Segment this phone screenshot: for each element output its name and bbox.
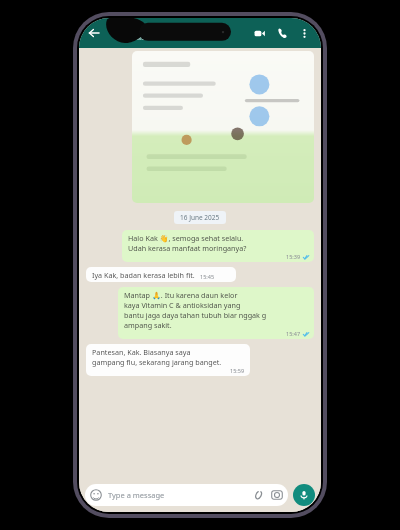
button[interactable]: 16 June 2025 bbox=[180, 213, 220, 222]
button[interactable]: Pantesan, Kak. Biasanya saya bbox=[86, 344, 250, 376]
button[interactable]: Call bbox=[273, 24, 291, 42]
staticText: last seen to.. bbox=[127, 35, 157, 42]
staticText: Type a message bbox=[108, 490, 165, 500]
staticText: Mantap 🙏. Itu karena daun kelor bbox=[124, 290, 238, 300]
button[interactable]: Back bbox=[86, 25, 102, 41]
staticText: 15:59 bbox=[230, 367, 245, 374]
button[interactable]: Voice message bbox=[293, 484, 315, 506]
button[interactable]: Emoji bbox=[85, 484, 288, 506]
staticText: bantu jaga daya tahan tubuh biar nggak g bbox=[124, 310, 267, 320]
button[interactable]: Video call bbox=[250, 24, 268, 42]
staticText: gampang flu, sekarang jarang banget. bbox=[92, 357, 222, 367]
staticText: 16 June 2025 bbox=[180, 213, 220, 222]
button[interactable]: Attach bbox=[252, 489, 264, 501]
button[interactable]: More options bbox=[295, 24, 313, 42]
staticText: 15:47 bbox=[286, 330, 301, 337]
staticText: Udah kerasa manfaat moringanya? bbox=[128, 243, 247, 253]
button[interactable]: last seen to.. bbox=[105, 18, 250, 48]
button[interactable]: Iya Kak, badan kerasa lebih fit. bbox=[86, 267, 236, 282]
button[interactable]: Camera bbox=[271, 489, 283, 501]
button[interactable]: Emoji bbox=[90, 489, 102, 501]
staticText: 15:39 bbox=[286, 253, 301, 260]
staticText: 15:45 bbox=[200, 273, 215, 280]
button[interactable]: Mantap 🙏. Itu karena daun kelor bbox=[118, 287, 314, 339]
staticText: kaya Vitamin C & antioksidan yang bbox=[124, 300, 241, 310]
staticText: Iya Kak, badan kerasa lebih fit. bbox=[92, 270, 195, 280]
staticText: Pantesan, Kak. Biasanya saya bbox=[92, 347, 191, 357]
staticText: ampang sakit. bbox=[124, 320, 172, 330]
staticText: Halo Kak 👋, semoga sehat selalu. bbox=[128, 233, 244, 243]
button[interactable]: Halo Kak 👋, semoga sehat selalu. bbox=[122, 230, 314, 262]
button[interactable]: Photo bbox=[132, 51, 314, 203]
